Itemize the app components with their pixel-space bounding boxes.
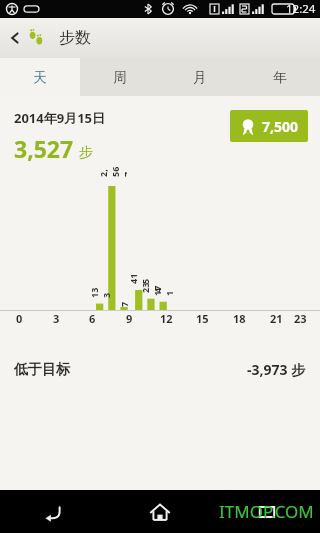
staticText: 年 <box>273 69 287 86</box>
staticText: 7,500 <box>262 117 299 136</box>
button[interactable]: 天 <box>0 58 80 96</box>
staticText: 月 <box>193 69 207 86</box>
staticText: 79% <box>274 5 288 14</box>
staticText: 18 <box>233 311 246 326</box>
button[interactable]: Recent apps <box>213 490 320 533</box>
staticText: 0 <box>16 311 23 326</box>
button[interactable]: 月 <box>160 58 240 96</box>
staticText: 23 <box>294 311 307 326</box>
staticText: 12:24 <box>286 1 316 17</box>
staticText: 6 <box>89 311 96 326</box>
button[interactable]: 低于目标 <box>0 356 320 383</box>
button[interactable]: Back <box>0 18 101 58</box>
button[interactable]: Home <box>106 490 213 533</box>
button[interactable]: 7,500 <box>230 110 308 142</box>
button[interactable]: 周 <box>80 58 160 96</box>
staticText: 3,527 <box>14 133 74 164</box>
staticText: 12 <box>160 311 173 326</box>
staticText: 2014年9月15日 <box>14 109 106 127</box>
staticText: 415 <box>127 272 151 284</box>
button[interactable]: 年 <box>240 58 320 96</box>
staticText: 3 <box>53 311 60 326</box>
staticText: 133 <box>88 286 112 298</box>
button[interactable]: Back <box>0 490 106 533</box>
staticText: 234 <box>139 281 163 293</box>
other: Back <box>8 28 22 48</box>
staticText: 步数 <box>59 28 91 48</box>
staticText: 天 <box>33 69 47 86</box>
staticText: 21 <box>270 311 283 326</box>
staticText: -3,973 步 <box>247 360 306 379</box>
staticText: 周 <box>113 69 127 86</box>
staticText: ITMOP.COM <box>219 500 314 523</box>
staticText: 7 <box>118 301 130 307</box>
staticText: 低于目标 <box>14 361 70 379</box>
staticText: 2,567 <box>97 165 127 177</box>
staticText: 步 <box>79 144 93 162</box>
staticText: 9 <box>126 311 133 326</box>
staticText: 15 <box>196 311 209 326</box>
staticText: 171 <box>151 284 175 296</box>
